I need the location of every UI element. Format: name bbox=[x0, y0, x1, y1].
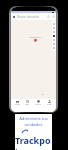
button[interactable]: Alertas bbox=[34, 100, 43, 106]
button[interactable]: Herramienta de mapa bbox=[53, 35, 55, 37]
staticText: Mapa bbox=[15, 103, 20, 106]
staticText: Alertas bbox=[35, 103, 42, 106]
button[interactable]: Herramienta de mapa bbox=[53, 47, 55, 49]
button[interactable]: Lista bbox=[24, 100, 31, 106]
button[interactable]: Herramienta de mapa bbox=[53, 27, 55, 29]
staticText: Buscar ubicación bbox=[17, 15, 40, 19]
button[interactable]: Mapa bbox=[14, 100, 21, 106]
staticText: Perfil bbox=[47, 103, 52, 106]
staticText: Unidad 214 bbox=[29, 35, 42, 38]
button[interactable]: Herramienta de mapa bbox=[53, 23, 55, 25]
staticText: Trackpoint bbox=[15, 134, 52, 150]
button[interactable]: Herramienta de mapa bbox=[53, 39, 55, 41]
staticText: Lista bbox=[25, 103, 30, 106]
button[interactable]: Perfil bbox=[46, 100, 53, 106]
button[interactable]: Herramienta de mapa bbox=[53, 43, 55, 45]
button[interactable]: Herramienta de mapa bbox=[53, 31, 55, 33]
staticText: Administra tus unidades bbox=[15, 116, 52, 128]
button[interactable]: Perfil bbox=[52, 15, 55, 18]
button[interactable]: Capas bbox=[47, 15, 50, 18]
